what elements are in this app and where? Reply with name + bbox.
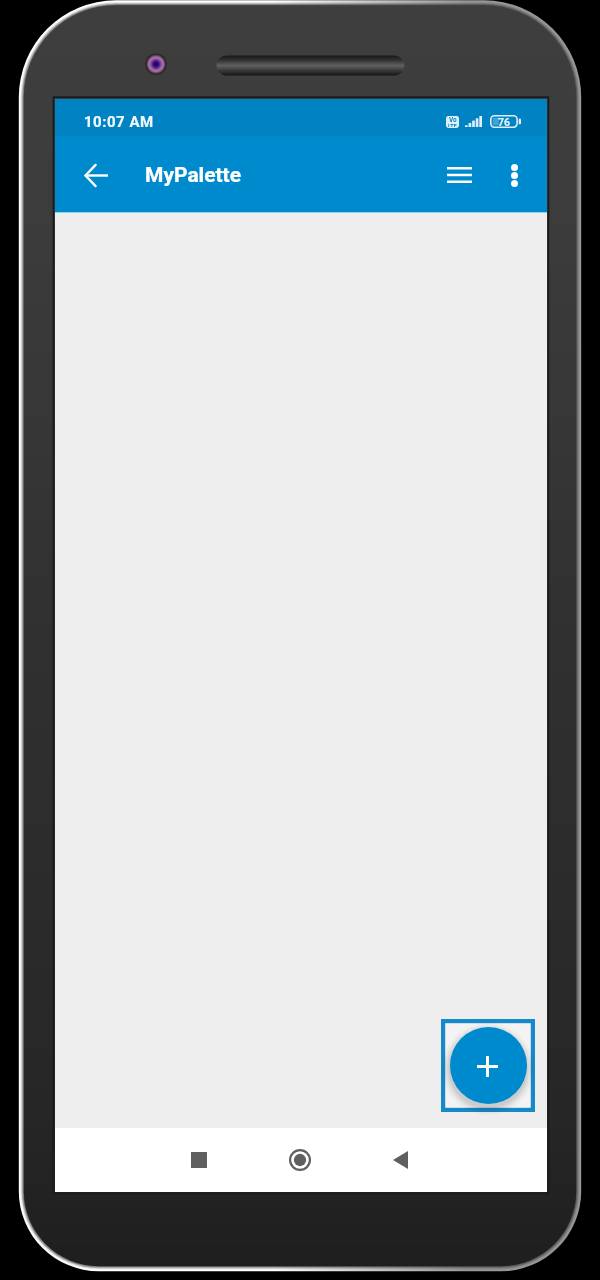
button[interactable]: Back bbox=[372, 1132, 428, 1188]
staticText: Vo bbox=[449, 116, 457, 124]
button[interactable]: Back bbox=[71, 150, 121, 200]
staticText: LTE bbox=[448, 123, 457, 127]
button[interactable]: Recents bbox=[171, 1132, 227, 1188]
button[interactable]: More options bbox=[489, 150, 539, 200]
staticText: MyPalette bbox=[145, 163, 242, 188]
staticText: 10:07 AM bbox=[84, 113, 154, 131]
button[interactable]: Menu bbox=[434, 150, 484, 200]
button[interactable]: Home bbox=[272, 1132, 328, 1188]
button[interactable]: Add bbox=[450, 1027, 527, 1104]
staticText: 76 bbox=[498, 116, 511, 128]
